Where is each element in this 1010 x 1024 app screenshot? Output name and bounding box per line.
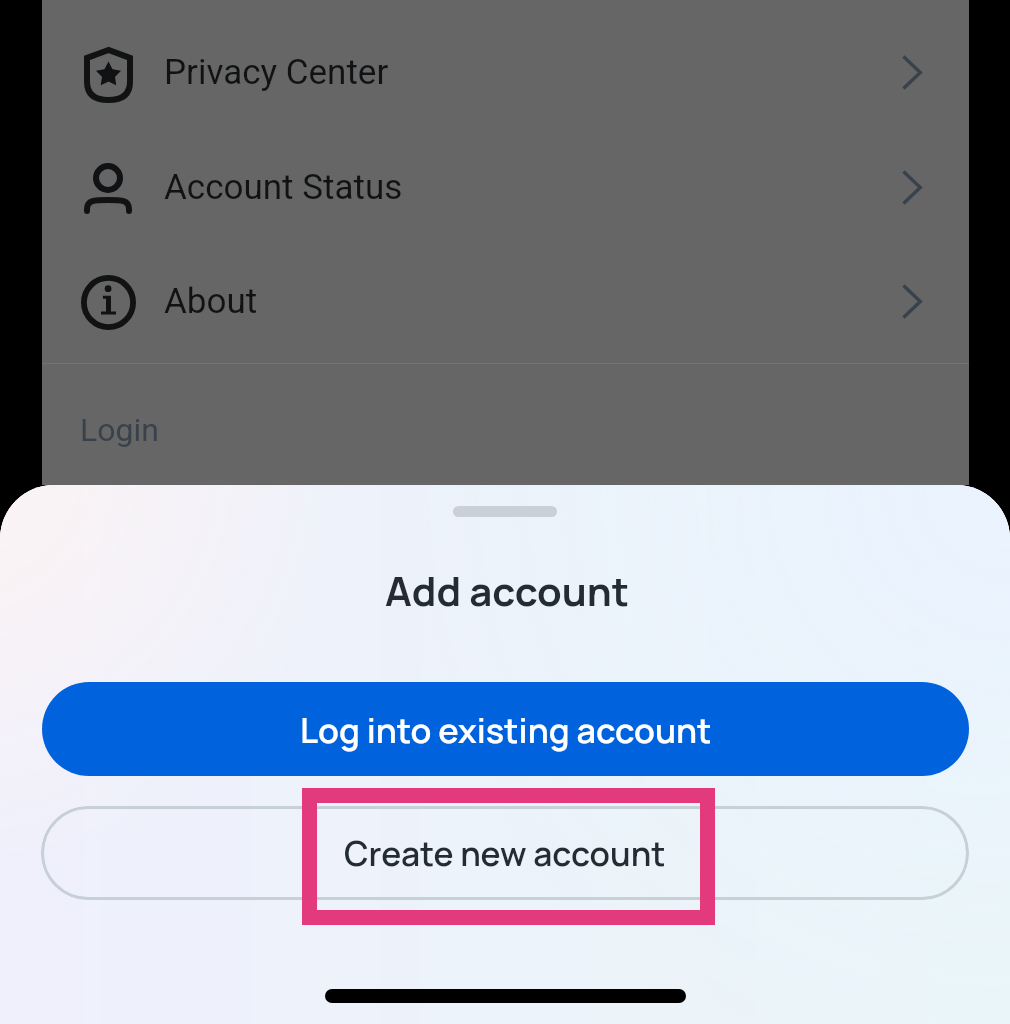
staticText: Add account (385, 563, 630, 618)
other: Open (903, 285, 922, 318)
staticText: Account Status (164, 167, 403, 208)
button[interactable]: Log into existing account (42, 682, 969, 776)
staticText: Privacy Center (164, 52, 389, 93)
staticText: Create new account (344, 830, 666, 876)
button[interactable]: Drag handle (435, 496, 575, 526)
staticText: About (164, 281, 258, 322)
other: Open (903, 56, 922, 89)
staticText: Login (80, 411, 159, 449)
button[interactable]: Login (42, 380, 969, 485)
button[interactable]: About (42, 244, 969, 359)
button[interactable]: Create new account (41, 806, 969, 900)
other: Open (903, 171, 922, 204)
staticText: Log into existing account (300, 706, 712, 753)
button[interactable]: Account Status (42, 130, 969, 245)
button[interactable]: Privacy Center (42, 15, 969, 130)
